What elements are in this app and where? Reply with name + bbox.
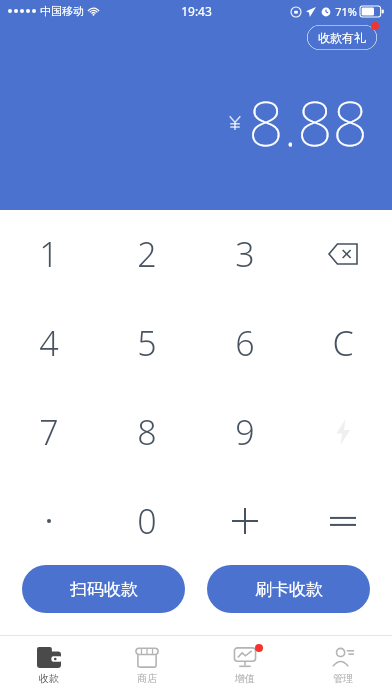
button[interactable]: 3 (196, 210, 294, 298)
button[interactable]: 5 (98, 298, 196, 387)
staticText: 9 (235, 409, 255, 455)
staticText: 中国移动 (40, 4, 84, 18)
button[interactable]: 9 (196, 387, 294, 476)
staticText: 扫码收款 (70, 579, 138, 600)
staticText: 2 (137, 231, 157, 277)
staticText: 19:43 (181, 3, 212, 19)
button[interactable] (196, 476, 294, 565)
button[interactable]: Backspace (294, 210, 392, 298)
button[interactable]: 刷卡收款 (207, 565, 370, 613)
button[interactable]: C (294, 298, 392, 387)
button[interactable]: 8 (98, 387, 196, 476)
staticText: C (332, 320, 354, 366)
staticText: 71% (335, 4, 357, 19)
button[interactable]: 商店 (98, 636, 196, 696)
button[interactable]: 收款有礼 (306, 24, 378, 51)
button[interactable] (0, 476, 98, 565)
staticText: 商店 (137, 672, 157, 685)
button[interactable]: 0 (98, 476, 196, 565)
staticText: 8 (137, 409, 157, 455)
staticText: 8.88 (248, 80, 368, 164)
button[interactable]: 增值 (196, 636, 294, 696)
staticText: 0 (137, 498, 157, 544)
button[interactable]: 扫码收款 (22, 565, 185, 613)
staticText: 4 (39, 320, 59, 366)
button[interactable]: 6 (196, 298, 294, 387)
button[interactable]: 1 (0, 210, 98, 298)
button[interactable] (294, 476, 392, 565)
button[interactable]: 管理 (294, 636, 392, 696)
staticText: 1 (39, 231, 59, 277)
staticText: 增值 (235, 672, 255, 685)
staticText: 刷卡收款 (255, 579, 323, 600)
button[interactable]: 2 (98, 210, 196, 298)
button[interactable]: 收款 (0, 636, 98, 696)
staticText: 5 (137, 320, 157, 366)
staticText: 收款有礼 (318, 30, 366, 45)
staticText: 7 (39, 409, 59, 455)
staticText: 收款 (39, 672, 59, 685)
staticText: 6 (235, 320, 255, 366)
button[interactable]: 4 (0, 298, 98, 387)
staticText: 管理 (333, 672, 353, 685)
staticText: 3 (235, 231, 255, 277)
button[interactable]: 7 (0, 387, 98, 476)
